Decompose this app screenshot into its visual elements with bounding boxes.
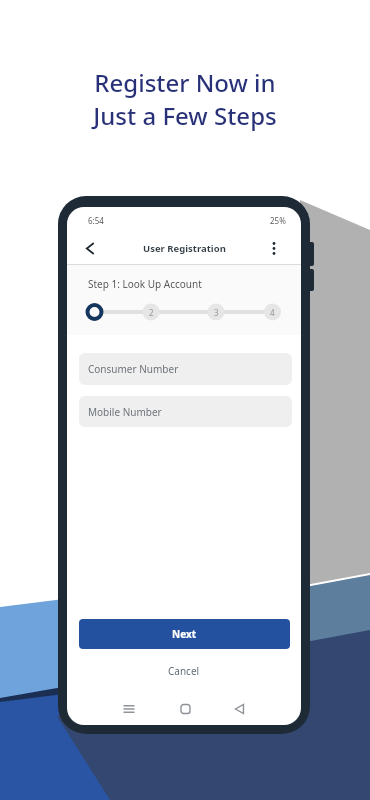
button[interactable]: Cancel bbox=[67, 662, 301, 680]
staticText: Cancel bbox=[168, 664, 200, 678]
staticText: Next bbox=[172, 627, 197, 641]
staticText: 2 bbox=[149, 307, 154, 318]
staticText: Step 1: Look Up Account bbox=[88, 277, 202, 291]
staticText: 6:54 bbox=[88, 215, 104, 226]
button[interactable]: Next bbox=[79, 619, 290, 649]
button[interactable] bbox=[265, 238, 283, 259]
staticText: 4 bbox=[270, 307, 275, 318]
staticText: 25% bbox=[270, 215, 286, 226]
button[interactable] bbox=[80, 238, 100, 259]
button[interactable]: Mobile Number bbox=[79, 396, 292, 427]
staticText: Mobile Number bbox=[88, 405, 162, 419]
staticText: User Registration bbox=[143, 242, 226, 255]
button[interactable]: Consumer Number bbox=[79, 353, 292, 385]
staticText: Register Now in Just a Few Steps bbox=[93, 66, 277, 132]
staticText: Consumer Number bbox=[88, 362, 179, 376]
staticText: 3 bbox=[214, 307, 219, 318]
